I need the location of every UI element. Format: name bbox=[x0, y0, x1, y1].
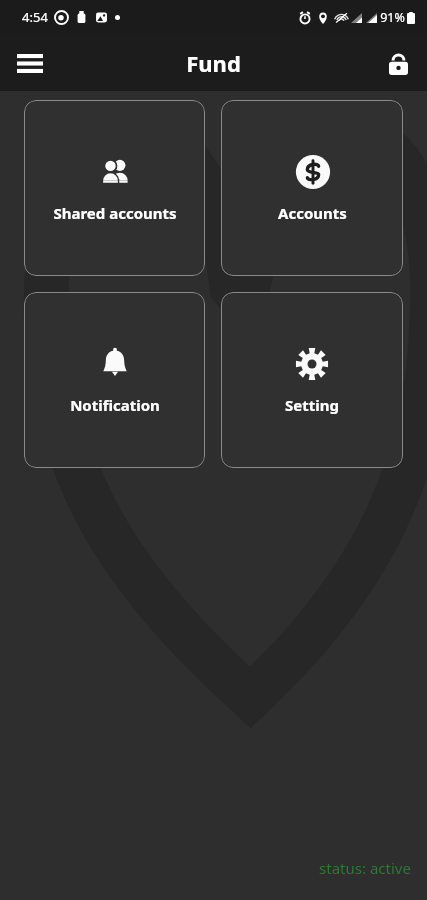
staticText: Fund bbox=[186, 48, 241, 78]
button[interactable]: Accounts bbox=[221, 100, 403, 276]
button[interactable]: Lock bbox=[376, 41, 420, 85]
staticText: Accounts bbox=[278, 203, 347, 223]
staticText: Setting bbox=[285, 395, 339, 415]
staticText: Notification bbox=[70, 395, 160, 415]
button[interactable]: Shared accounts bbox=[24, 100, 205, 276]
staticText: 4:54 bbox=[22, 8, 48, 26]
staticText: status: active bbox=[319, 858, 411, 878]
button[interactable]: Notification bbox=[24, 292, 205, 468]
button[interactable]: Setting bbox=[221, 292, 403, 468]
button[interactable]: Open navigation menu bbox=[6, 39, 54, 87]
staticText: 91% bbox=[380, 9, 405, 26]
staticText: Shared accounts bbox=[53, 203, 177, 223]
